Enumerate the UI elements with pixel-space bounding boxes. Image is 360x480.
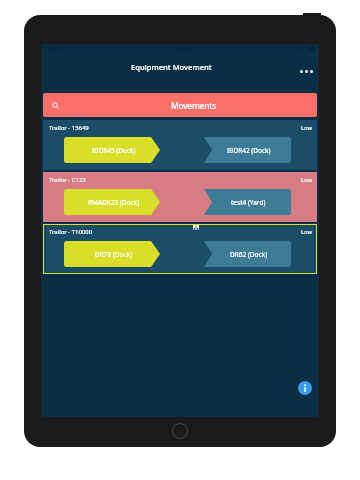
staticText: Low — [301, 124, 313, 132]
staticText: DR62 (Dock) — [230, 250, 268, 259]
button[interactable]: Trailor - C123 — [43, 172, 317, 222]
staticText: RMADR23 (Dock) — [88, 198, 140, 207]
staticText: Trailor - T10000 — [49, 228, 93, 236]
staticText: Trailor - C123 — [49, 176, 86, 184]
staticText: Trailor - 15649 — [49, 124, 89, 132]
button[interactable]: Trailor - 15649 — [43, 120, 317, 170]
staticText: Low — [301, 228, 313, 236]
button[interactable]: Trailor - T10000 — [43, 224, 317, 274]
button[interactable]: Movements — [43, 93, 317, 117]
staticText: DR78 (Dock) — [95, 250, 133, 259]
staticText: Movements — [171, 100, 216, 111]
button[interactable]: More options — [297, 67, 316, 76]
button[interactable]: Information — [298, 381, 312, 395]
staticText: IBDR45 (Dock) — [92, 146, 136, 155]
staticText: Low — [301, 176, 313, 184]
staticText: test4 (Yard) — [231, 198, 266, 207]
staticText: Equipment Movement — [131, 62, 212, 72]
staticText: IBDR42 (Dock) — [227, 146, 271, 155]
